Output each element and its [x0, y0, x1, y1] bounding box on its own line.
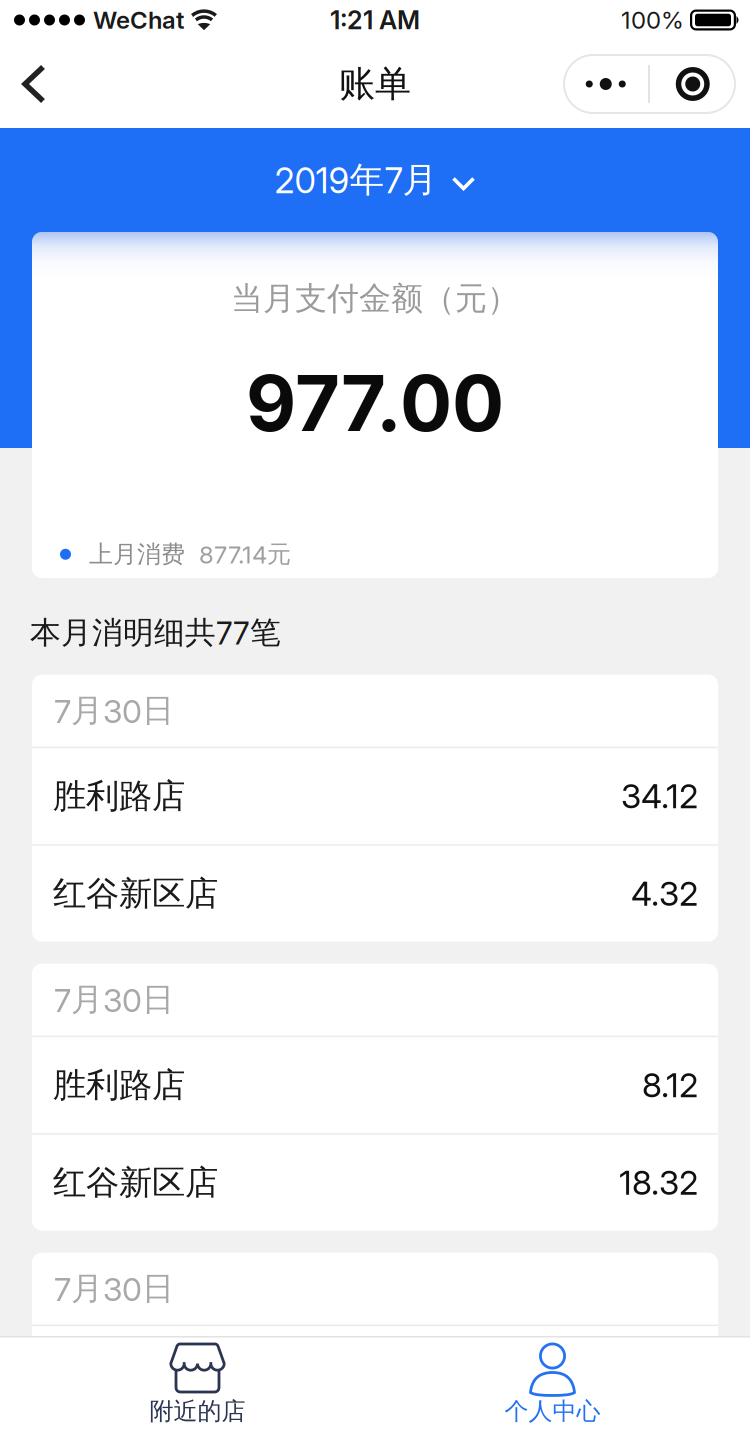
- staticText: 877.14元: [199, 539, 291, 569]
- staticText: 个人中心: [504, 1396, 600, 1426]
- staticText: 胜利路店: [53, 1065, 185, 1106]
- staticText: 8.12: [642, 1065, 698, 1105]
- button[interactable]: More: [563, 54, 648, 114]
- staticText: 2019年7月: [274, 159, 437, 201]
- staticText: 本月消明细共77笔: [30, 614, 281, 652]
- button[interactable]: 附近的店: [20, 1342, 375, 1426]
- button[interactable]: Close: [650, 54, 736, 114]
- staticText: 附近的店: [149, 1396, 245, 1426]
- button[interactable]: Back: [0, 54, 48, 114]
- staticText: 胜利路店: [53, 776, 185, 817]
- staticText: 18.32: [619, 1163, 698, 1202]
- staticText: 4.32: [631, 874, 698, 913]
- staticText: 1:21 AM: [330, 5, 420, 35]
- staticText: 上月消费: [89, 539, 185, 569]
- staticText: 当月支付金额（元）: [231, 279, 519, 318]
- button[interactable]: 胜利路店: [32, 748, 718, 844]
- button[interactable]: 红谷新区店: [32, 846, 718, 942]
- staticText: 100%: [621, 6, 684, 34]
- staticText: 34.12: [621, 776, 698, 816]
- staticText: 胜利路店: [53, 1354, 185, 1395]
- button[interactable]: 红谷新区店: [32, 1135, 718, 1231]
- staticText: 红谷新区店: [53, 1162, 218, 1203]
- staticText: 7月30日: [54, 980, 174, 1019]
- staticText: 红谷新区店: [53, 873, 218, 914]
- staticText: 7月30日: [54, 1269, 174, 1308]
- button[interactable]: 胜利路店: [32, 1326, 718, 1422]
- button[interactable]: 个人中心: [375, 1342, 730, 1426]
- staticText: 账单: [339, 62, 411, 106]
- button[interactable]: 选择月份: [0, 128, 750, 232]
- staticText: WeChat: [93, 6, 184, 34]
- button[interactable]: 胜利路店: [32, 1037, 718, 1133]
- staticText: 977.00: [246, 357, 504, 448]
- staticText: 7月30日: [54, 691, 174, 730]
